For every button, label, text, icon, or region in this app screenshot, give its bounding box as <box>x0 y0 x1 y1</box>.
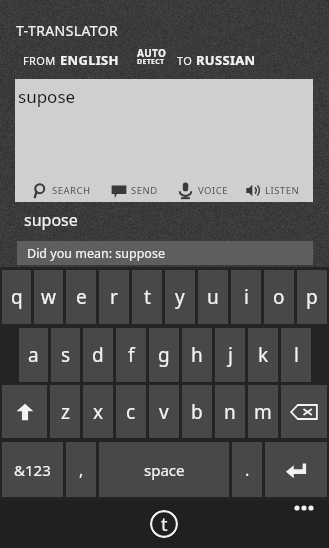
button[interactable]: d <box>83 328 113 382</box>
button[interactable]: f <box>116 328 146 382</box>
button[interactable]: n <box>215 385 245 438</box>
staticText: u <box>207 284 219 310</box>
button[interactable]: x <box>83 385 113 438</box>
staticText: e <box>76 284 87 310</box>
staticText: DETECT <box>137 57 165 67</box>
staticText: TO <box>177 53 196 68</box>
staticText: p <box>306 284 318 310</box>
button[interactable]: m <box>248 385 278 438</box>
staticText: n <box>224 399 236 425</box>
staticText: t <box>144 284 151 310</box>
staticText: x <box>93 399 104 425</box>
button[interactable]: c <box>116 385 146 438</box>
button[interactable]: p <box>297 270 327 324</box>
button[interactable]: v <box>149 385 179 438</box>
button[interactable]: VOICE <box>177 179 229 202</box>
button[interactable]: r <box>99 270 129 324</box>
button[interactable]: space <box>99 442 229 497</box>
button[interactable]: Translate <box>150 510 178 538</box>
staticText: T-TRANSLATOR <box>16 21 119 40</box>
button[interactable]: s <box>51 328 80 382</box>
staticText: ENGLISH <box>60 51 119 69</box>
staticText: d <box>92 342 104 368</box>
staticText: y <box>175 284 185 310</box>
button[interactable]: z <box>50 385 80 438</box>
staticText: Did you mean: suppose <box>27 245 165 262</box>
staticText: space <box>144 460 185 480</box>
button[interactable]: l <box>281 328 311 382</box>
staticText: o <box>273 284 285 310</box>
button[interactable]: h <box>182 328 212 382</box>
button[interactable]: Enter <box>265 442 327 497</box>
staticText: VOICE <box>198 184 229 197</box>
staticText: supose <box>18 85 76 108</box>
staticText: v <box>159 399 169 425</box>
button[interactable]: g <box>149 328 179 382</box>
staticText: , <box>79 459 84 481</box>
button[interactable]: k <box>248 328 278 382</box>
staticText: l <box>294 342 299 368</box>
staticText: a <box>28 342 39 368</box>
button[interactable]: u <box>198 270 228 324</box>
staticText: h <box>191 342 203 368</box>
staticText: RUSSIAN <box>196 51 256 69</box>
staticText: t <box>161 512 168 537</box>
staticText: s <box>61 342 71 368</box>
staticText: b <box>191 399 203 425</box>
staticText: FROM <box>23 53 59 68</box>
staticText: supose <box>24 209 78 231</box>
button[interactable]: Backspace <box>281 385 327 438</box>
button[interactable]: j <box>215 328 245 382</box>
staticText: AUTO <box>137 46 167 60</box>
staticText: r <box>110 284 118 310</box>
button[interactable]: Shift <box>2 385 47 438</box>
staticText: m <box>254 399 272 425</box>
staticText: &123 <box>14 460 51 480</box>
staticText: g <box>158 342 170 368</box>
button[interactable]: o <box>264 270 294 324</box>
staticText: . <box>245 459 250 481</box>
button[interactable]: t <box>132 270 162 324</box>
staticText: SEARCH <box>52 184 91 197</box>
button[interactable]: e <box>66 270 96 324</box>
button[interactable]: w <box>34 270 63 324</box>
staticText: SEND <box>131 184 158 197</box>
button[interactable]: i <box>231 270 261 324</box>
staticText: z <box>61 399 70 425</box>
staticText: c <box>126 399 136 425</box>
button[interactable]: Did you mean: suppose <box>17 241 313 265</box>
staticText: q <box>11 284 23 310</box>
button[interactable]: . <box>232 442 262 497</box>
button[interactable]: a <box>19 328 48 382</box>
button[interactable]: y <box>165 270 195 324</box>
button[interactable]: LISTEN <box>246 179 300 202</box>
staticText: LISTEN <box>265 184 300 197</box>
button[interactable]: &123 <box>2 442 63 497</box>
button[interactable]: , <box>66 442 96 497</box>
staticText: i <box>244 284 249 310</box>
staticText: f <box>128 342 135 368</box>
button[interactable]: More options <box>288 500 320 518</box>
staticText: k <box>258 342 269 368</box>
button[interactable]: SEARCH <box>33 179 91 202</box>
button[interactable]: q <box>2 270 31 324</box>
button[interactable]: SEND <box>111 179 158 202</box>
staticText: w <box>41 284 56 310</box>
staticText: j <box>228 342 233 368</box>
button[interactable]: b <box>182 385 212 438</box>
